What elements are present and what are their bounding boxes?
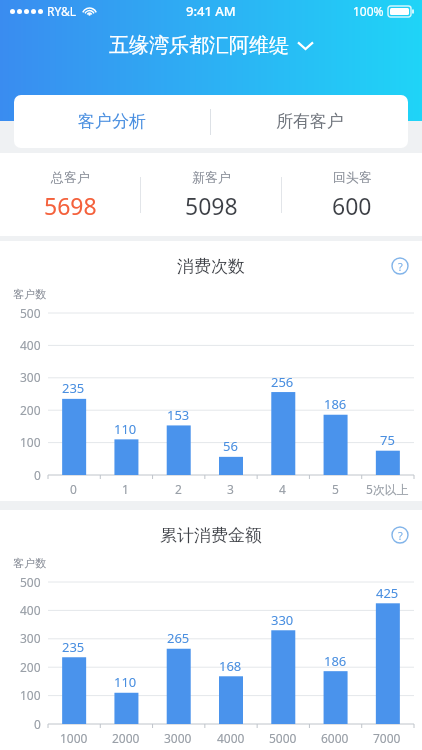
button[interactable]: 客户分析 [14,95,210,148]
staticText: RY&L [47,3,76,19]
staticText: 客户数 [13,556,46,570]
staticText: 客户数 [13,287,46,301]
staticText: 235 [62,379,85,397]
staticText: ? [398,528,403,543]
staticText: 6000 [321,730,349,746]
staticText: ? [398,259,403,274]
staticText: 1 [122,481,129,497]
staticText: 100 [20,687,41,703]
staticText: 400 [20,602,41,618]
staticText: 186 [324,652,347,670]
staticText: 5000 [269,730,297,746]
staticText: 4 [279,481,286,497]
button[interactable]: 五缘湾乐都汇阿维缇 [103,30,319,61]
button[interactable]: 帮助 [391,526,409,544]
staticText: 100% [353,3,384,19]
staticText: 5次以上 [366,481,409,497]
staticText: 累计消费金额 [160,525,262,546]
button[interactable]: 新客户 [141,153,281,236]
button[interactable]: 所有客户 [211,95,408,148]
staticText: 0 [34,467,41,483]
staticText: 400 [20,337,41,353]
staticText: 消费次数 [177,256,245,277]
staticText: 56 [223,437,238,455]
staticText: 9:41 AM [186,2,236,20]
staticText: 186 [324,395,347,413]
staticText: 235 [62,638,85,656]
staticText: 所有客户 [276,111,344,132]
staticText: 5698 [44,190,97,221]
staticText: 回头客 [333,169,372,185]
staticText: 600 [332,190,372,221]
staticText: 100 [20,434,41,450]
staticText: 500 [20,305,41,321]
staticText: 五缘湾乐都汇阿维缇 [109,33,289,58]
staticText: 200 [20,659,41,675]
staticText: 5 [332,481,339,497]
button[interactable]: 回头客 [282,153,422,236]
staticText: 2 [175,481,182,497]
staticText: 新客户 [192,169,231,185]
staticText: 200 [20,402,41,418]
staticText: 75 [380,431,395,449]
staticText: 4000 [217,730,245,746]
staticText: 256 [271,373,294,391]
staticText: 330 [271,611,294,629]
staticText: 110 [114,420,137,438]
staticText: 0 [70,481,77,497]
staticText: 153 [167,406,190,424]
staticText: 110 [114,673,137,691]
staticText: 3 [227,481,234,497]
staticText: 0 [34,716,41,732]
staticText: 300 [20,630,41,646]
staticText: 300 [20,369,41,385]
button[interactable]: 总客户 [0,153,140,236]
staticText: 425 [376,584,399,602]
button[interactable]: 帮助 [391,257,409,275]
staticText: 总客户 [51,169,90,185]
staticText: 3000 [164,730,192,746]
staticText: 168 [219,657,242,675]
staticText: 2000 [112,730,140,746]
staticText: 5098 [185,190,238,221]
staticText: 265 [167,629,190,647]
staticText: 客户分析 [78,111,146,132]
staticText: 500 [20,574,41,590]
staticText: 1000 [60,730,88,746]
staticText: 7000 [373,730,401,746]
